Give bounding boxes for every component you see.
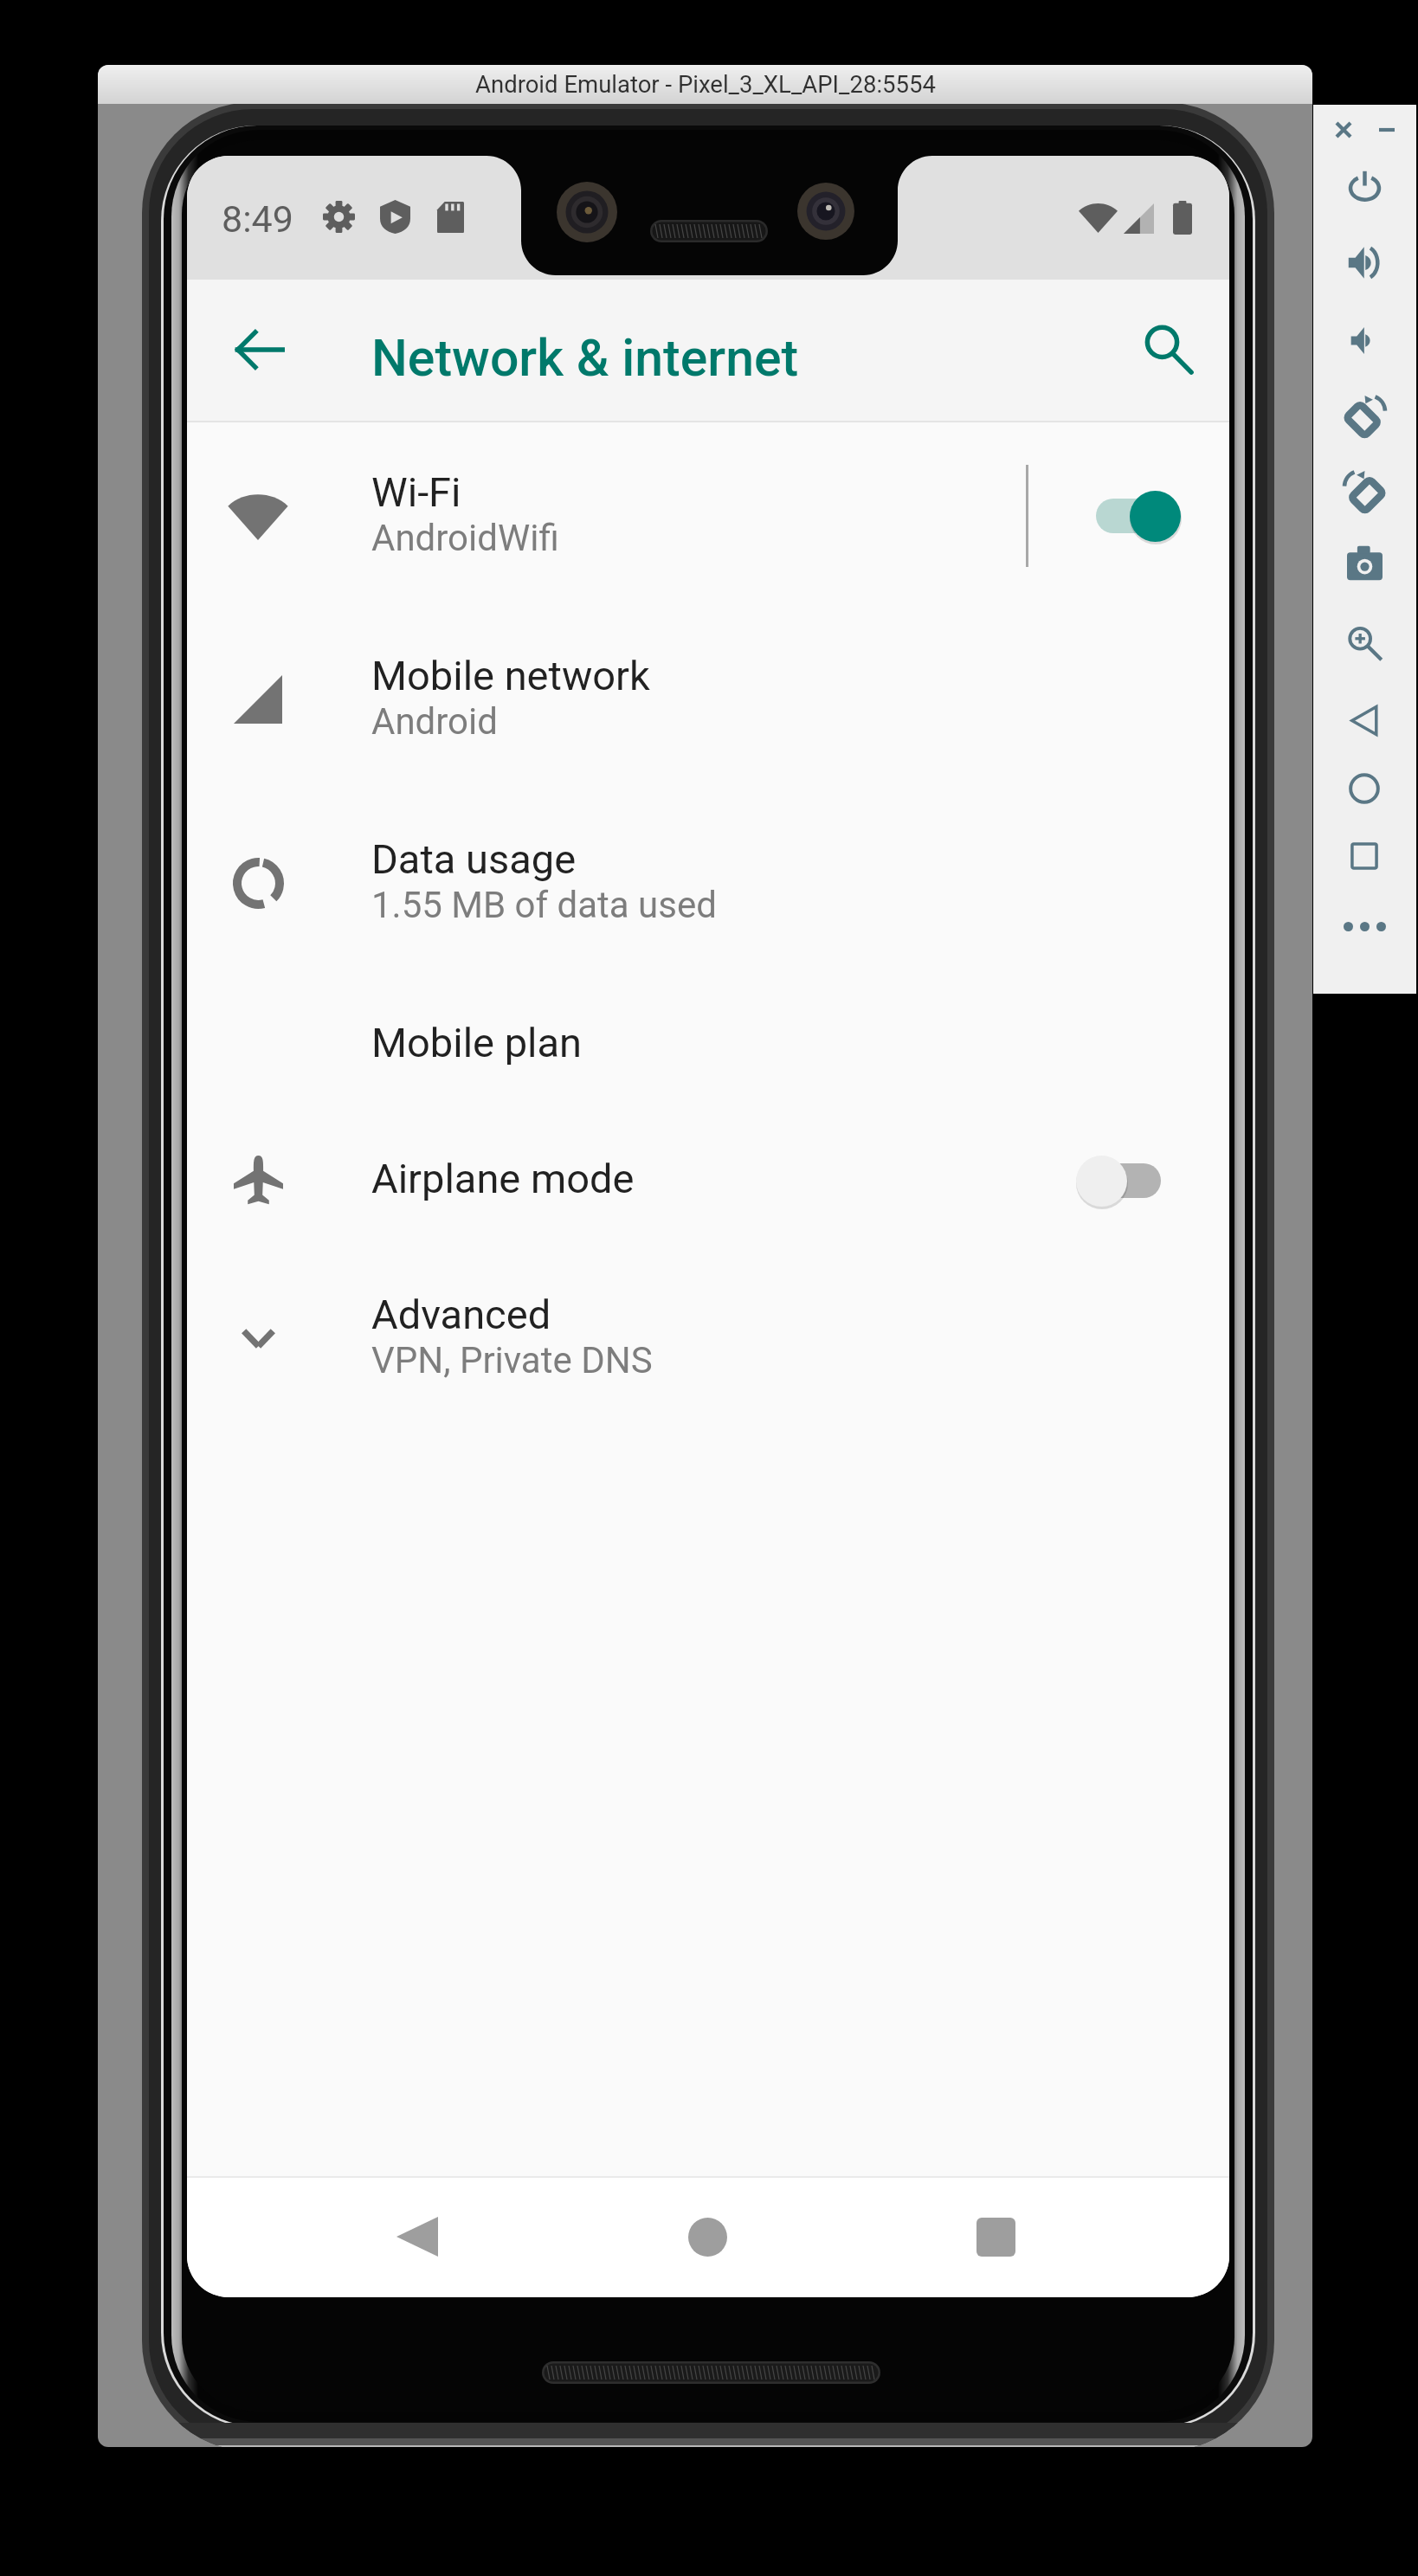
button[interactable]: Volume down xyxy=(1337,312,1392,368)
button[interactable]: More xyxy=(1337,898,1392,954)
button[interactable]: Minimize xyxy=(1368,111,1406,149)
staticText: VPN, Private DNS xyxy=(371,1339,653,1381)
button[interactable]: Turn on xyxy=(1070,1142,1191,1220)
button[interactable]: Recents xyxy=(948,2189,1043,2284)
button[interactable]: Home xyxy=(1337,761,1392,816)
staticText: Network & internet xyxy=(371,328,799,388)
button[interactable]: Volume up xyxy=(1337,235,1392,290)
button[interactable]: Wi-Fi xyxy=(187,424,1229,608)
staticText: Airplane mode xyxy=(371,1155,635,1202)
button[interactable]: Back xyxy=(218,308,301,391)
button[interactable]: Home xyxy=(660,2189,755,2284)
button[interactable]: Search xyxy=(1127,308,1210,391)
button[interactable]: Data usage xyxy=(187,791,1229,975)
staticText: Advanced xyxy=(371,1291,551,1338)
button[interactable]: Advanced xyxy=(187,1250,1229,1426)
button[interactable]: Rotate left xyxy=(1337,462,1392,518)
button[interactable]: Power xyxy=(1337,159,1392,215)
staticText: Data usage xyxy=(371,835,577,883)
button[interactable]: Mobile network xyxy=(187,608,1229,791)
staticText: 1.55 MB of data used xyxy=(371,884,717,926)
staticText: Wi-Fi xyxy=(371,468,461,516)
button[interactable]: Recents xyxy=(1337,828,1392,884)
button[interactable]: Close xyxy=(1325,111,1363,149)
button[interactable]: Back xyxy=(370,2189,465,2284)
button[interactable]: Screenshot xyxy=(1337,535,1392,590)
staticText: Android Emulator - Pixel_3_XL_API_28:555… xyxy=(475,70,936,98)
staticText: Mobile network xyxy=(371,652,650,699)
staticText: Android xyxy=(371,700,498,743)
button[interactable]: Zoom in xyxy=(1337,615,1392,671)
staticText: AndroidWifi xyxy=(371,517,559,559)
button[interactable]: Turn off xyxy=(1070,477,1191,555)
button[interactable]: Rotate right xyxy=(1337,387,1392,442)
button[interactable]: Back xyxy=(1337,692,1392,748)
button[interactable]: Airplane mode xyxy=(187,1115,1229,1246)
staticText: 8:49 xyxy=(222,197,293,241)
staticText: Mobile plan xyxy=(371,1019,583,1066)
button[interactable]: Mobile plan xyxy=(187,979,1229,1111)
